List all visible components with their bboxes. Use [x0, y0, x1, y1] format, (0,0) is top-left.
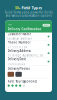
- staticText: Delivery Date: [8, 57, 27, 61]
- staticText: Delivery Address: [8, 49, 31, 53]
- staticText: +1 555 0134: [8, 45, 28, 49]
- staticText: Delivery Confirmation: [8, 27, 42, 31]
- staticText: and various customization options: [5, 14, 51, 17]
- staticText: 15 Ridge Apartments, 3B: [8, 54, 44, 57]
- staticText: Customer Name: [8, 32, 32, 36]
- staticText: 30+: [15, 5, 21, 10]
- staticText: Build forms using powerful fields: [4, 11, 52, 14]
- button[interactable]: Delivery Photos: [5, 66, 52, 78]
- button[interactable]: Delivery Address: [5, 49, 52, 57]
- staticText: Field Types: [21, 5, 42, 10]
- button[interactable]: Customer Name: [5, 32, 52, 40]
- staticText: Rate Your Experience: [8, 80, 38, 83]
- staticText: Delivery Photos: [8, 67, 30, 70]
- button[interactable]: Delivery Date: [5, 58, 52, 66]
- staticText: FORM: [8, 24, 12, 26]
- staticText: Phone Number: [8, 41, 31, 44]
- staticText: Draft: [44, 24, 49, 26]
- staticText: Jonathan Smithson: [8, 37, 33, 41]
- staticText: 15/05/2024: [8, 62, 26, 66]
- button[interactable]: Phone Number: [5, 41, 52, 49]
- button[interactable]: Rate Your Experience: [5, 78, 52, 88]
